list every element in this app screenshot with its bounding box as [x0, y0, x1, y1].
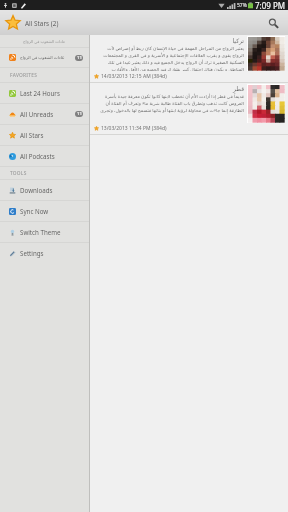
button[interactable]: All Unreads	[0, 104, 89, 124]
staticText: 57%	[237, 2, 247, 9]
button[interactable]: قطر	[90, 83, 288, 135]
staticText: 11	[77, 55, 82, 61]
button[interactable]: Sync Now	[0, 201, 89, 221]
staticText: All Unreads	[20, 110, 75, 118]
staticText: 14/03/2013 12:15 AM (384d)	[101, 73, 167, 80]
button[interactable]: عادات الشعوب في الزواج	[0, 48, 89, 67]
staticText: عادات الشعوب في الزواج	[23, 39, 66, 44]
button[interactable]: Settings	[0, 243, 89, 263]
staticText: TOOLS	[10, 170, 27, 177]
staticText: تركيا	[95, 37, 244, 44]
staticText: Switch Theme	[20, 228, 83, 236]
staticText: قطر	[95, 85, 244, 92]
staticText: All Stars (2)	[25, 19, 59, 28]
button[interactable]: All Stars	[0, 125, 89, 145]
staticText: Last 24 Hours	[20, 89, 83, 97]
staticText: قديماً في قطر إذا أرادت الأم أن تخطب لاب…	[95, 93, 244, 113]
staticText: FAVORITES	[10, 72, 38, 79]
staticText: يعتبر الزواج من المراحل المهمة في حياة ا…	[95, 45, 244, 71]
staticText: All Stars	[20, 131, 83, 139]
staticText: 11	[77, 111, 82, 117]
staticText: Downloads	[20, 186, 83, 194]
staticText: 7:09 PM	[255, 0, 286, 10]
staticText: Settings	[20, 249, 83, 257]
button[interactable]: All Stars (2)	[5, 15, 59, 31]
button[interactable]: Last 24 Hours	[0, 83, 89, 103]
button[interactable]: Switch Theme	[0, 222, 89, 242]
button[interactable]: All Podcasts	[0, 146, 89, 166]
button[interactable]: تركيا	[90, 35, 288, 83]
staticText: عادات الشعوب في الزواج	[20, 55, 75, 61]
staticText: All Podcasts	[20, 152, 83, 160]
button[interactable]: Downloads	[0, 180, 89, 200]
staticText: Sync Now	[20, 207, 83, 215]
staticText: 13/03/2013 11:34 PM (384d)	[101, 125, 167, 132]
button[interactable]: Search	[262, 12, 284, 34]
